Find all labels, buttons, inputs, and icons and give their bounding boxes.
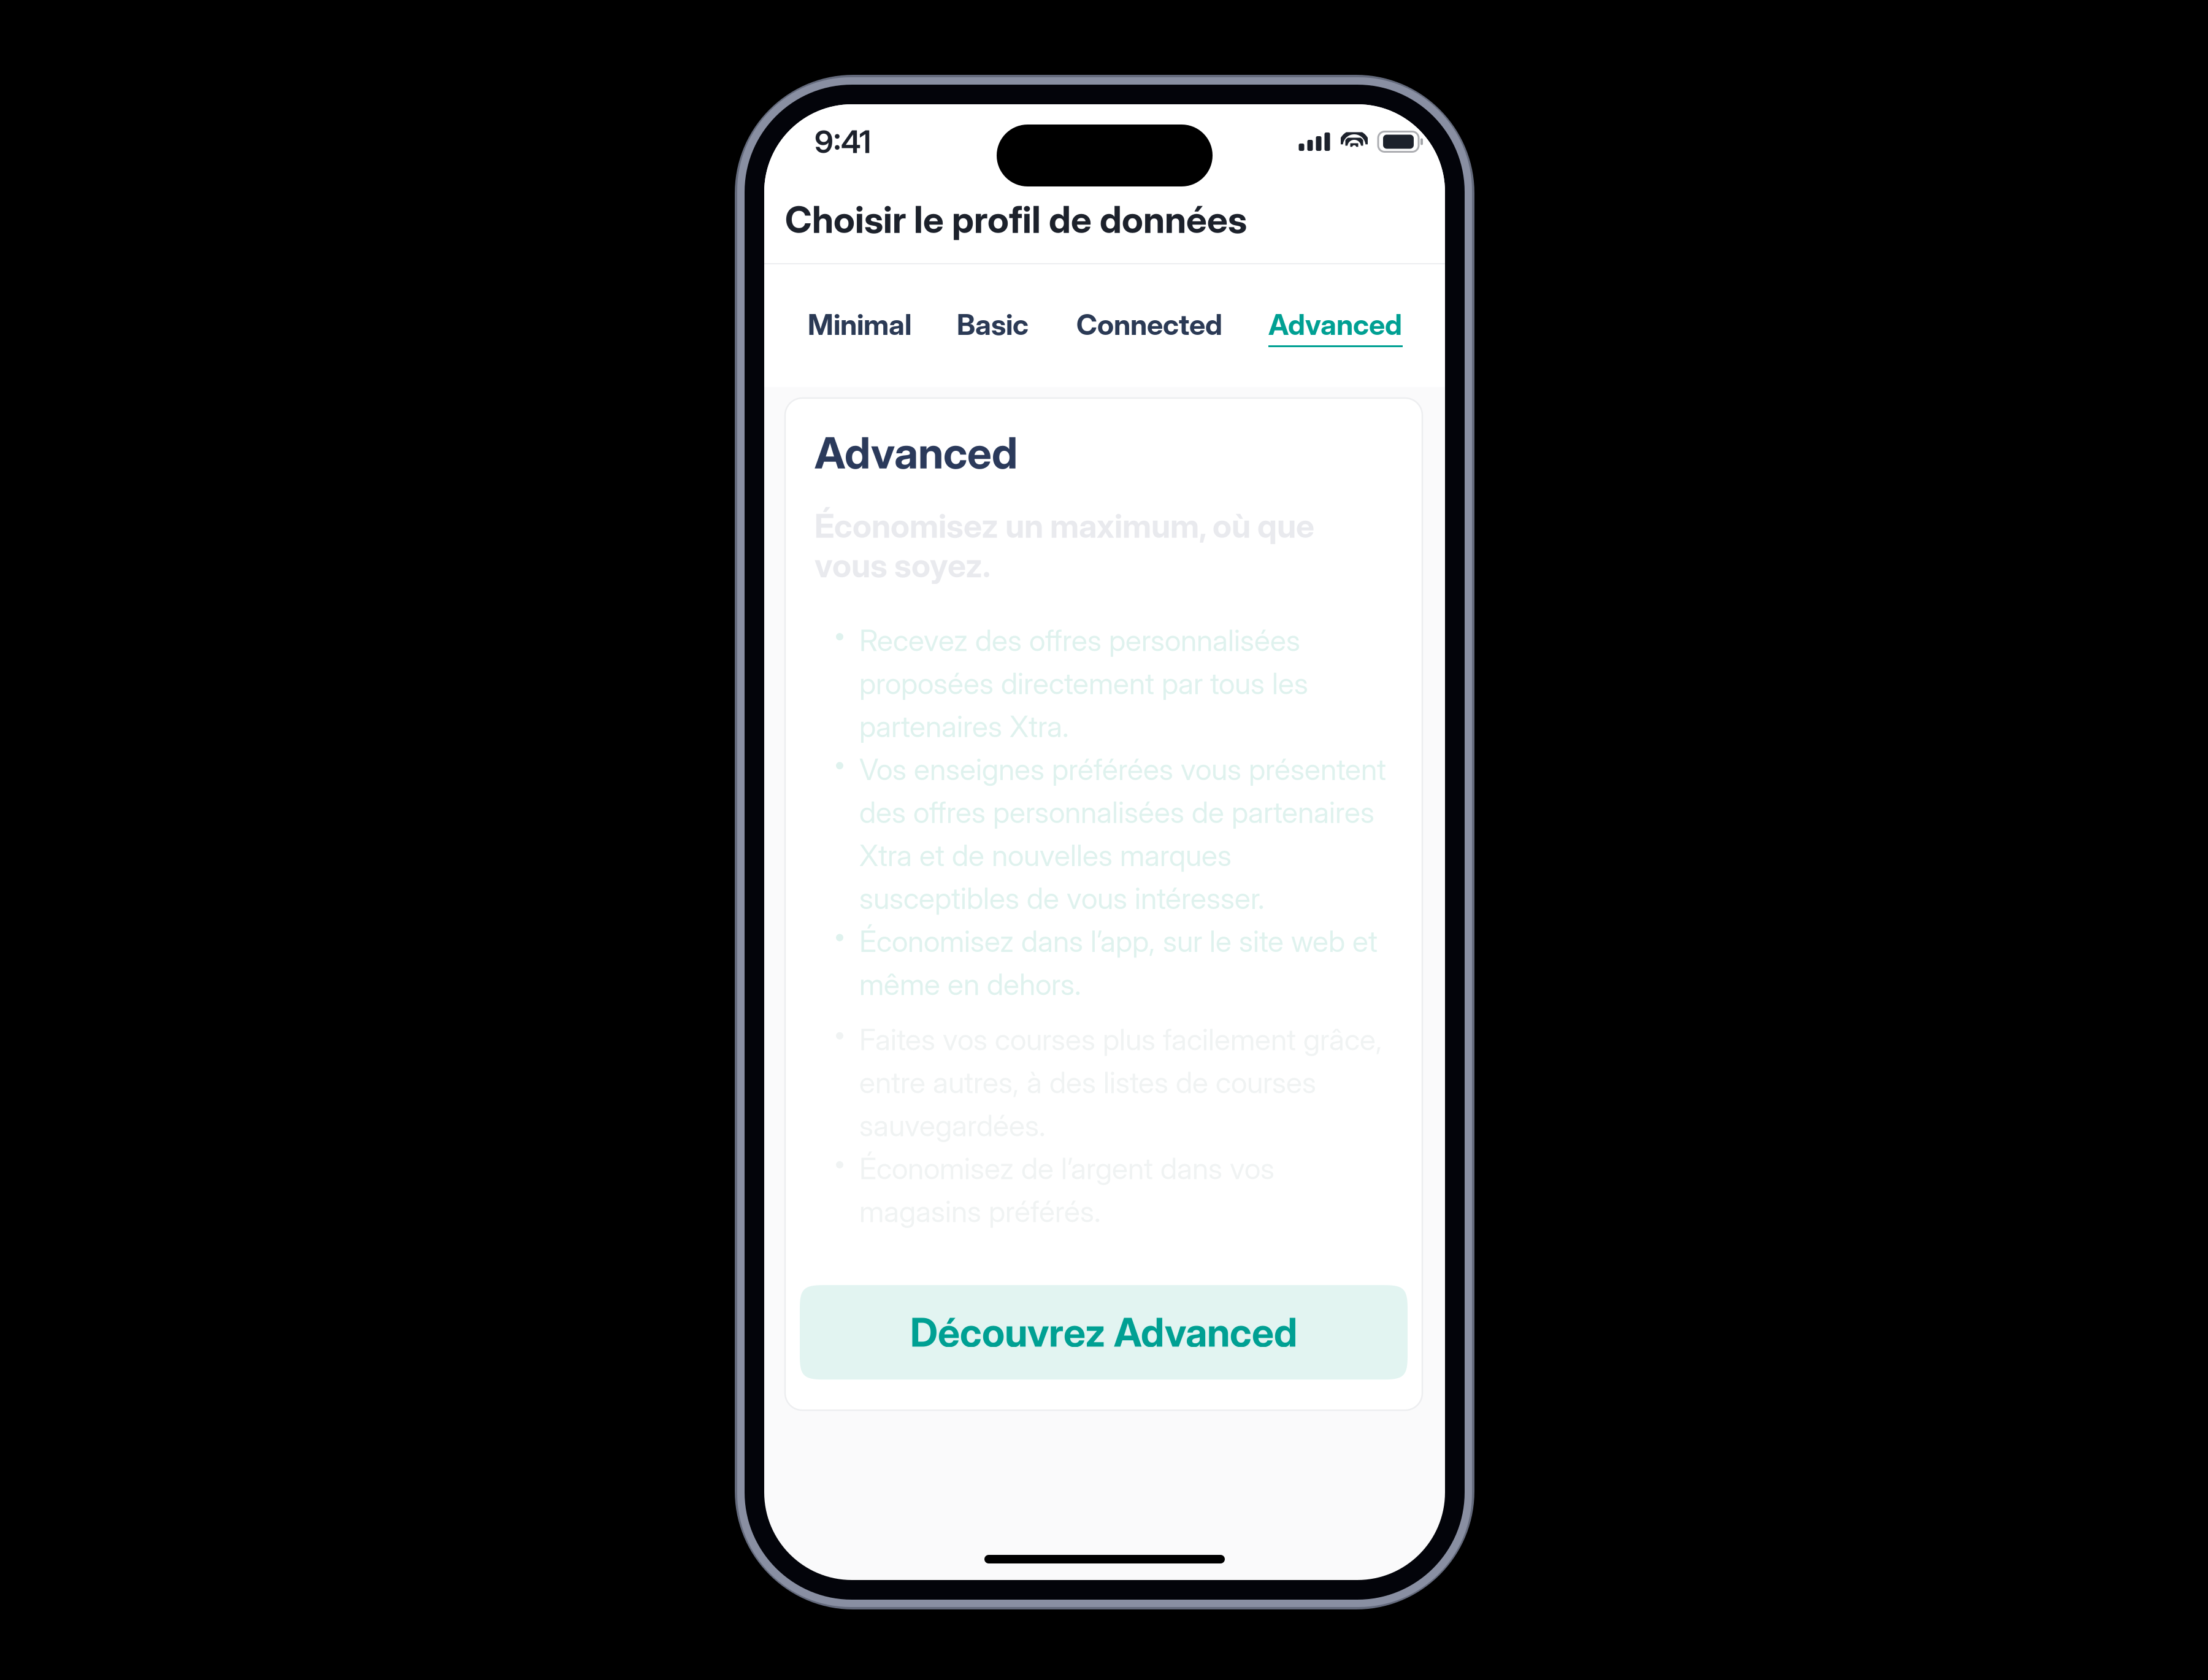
staticText: Découvrez Advanced — [910, 1309, 1297, 1356]
staticText: Économisez dans l’app, sur le site web e… — [859, 923, 1378, 1002]
staticText: Choisir le profil de données — [785, 197, 1247, 242]
staticText: Minimal — [808, 307, 911, 342]
button[interactable]: Connected — [1076, 310, 1222, 347]
staticText: Économisez un maximum, où que vous soyez… — [815, 506, 1314, 585]
button[interactable]: Découvrez Advanced — [800, 1285, 1408, 1380]
button[interactable]: Basic — [957, 310, 1037, 347]
staticText: Recevez des offres personnalisées propos… — [859, 623, 1308, 744]
staticText: Économisez de l’argent dans vos magasins… — [859, 1151, 1275, 1229]
staticText: Advanced — [1268, 307, 1402, 342]
staticText: 9:41 — [815, 123, 871, 160]
button[interactable]: Minimal — [808, 310, 918, 347]
button[interactable]: Advanced — [1268, 310, 1403, 347]
staticText: Advanced — [815, 426, 1018, 479]
staticText: Connected — [1076, 307, 1222, 342]
staticText: Basic — [957, 307, 1029, 342]
staticText: Faites vos courses plus facilement grâce… — [859, 1022, 1382, 1143]
staticText: Vos enseignes préférées vous présentent … — [859, 752, 1386, 916]
